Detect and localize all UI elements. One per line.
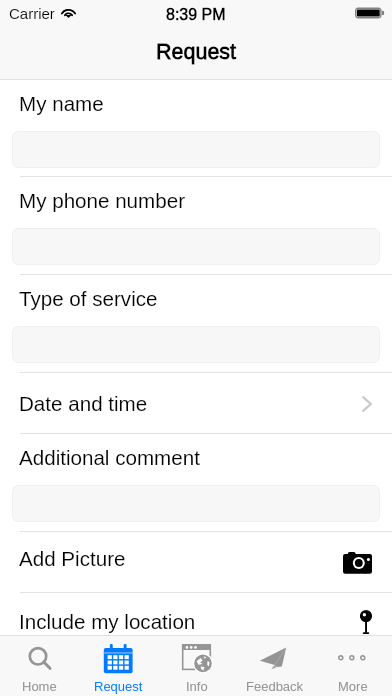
staticText: More bbox=[338, 679, 368, 694]
other: Add picture bbox=[343, 552, 372, 574]
button[interactable]: My name bbox=[0, 80, 392, 177]
staticText: Request bbox=[156, 40, 237, 64]
button[interactable]: Request bbox=[79, 635, 158, 696]
other: Include my location bbox=[358, 593, 372, 617]
staticText: Info bbox=[186, 679, 208, 694]
staticText: Type of service bbox=[19, 287, 158, 310]
button[interactable]: My phone number bbox=[0, 177, 392, 275]
button[interactable]: Add Picture bbox=[0, 532, 392, 593]
staticText: Feedback bbox=[246, 679, 304, 694]
staticText: Carrier bbox=[9, 5, 55, 22]
button[interactable]: Feedback bbox=[236, 635, 314, 696]
staticText: Date and time bbox=[19, 392, 148, 415]
button[interactable]: Info bbox=[158, 635, 236, 696]
staticText: Home bbox=[22, 679, 57, 694]
staticText: 8:39 PM bbox=[166, 6, 226, 24]
staticText: My phone number bbox=[19, 189, 185, 212]
staticText: Include my location bbox=[19, 610, 196, 633]
button[interactable]: Date and time bbox=[0, 373, 392, 434]
staticText: Request bbox=[94, 679, 143, 694]
staticText: My name bbox=[19, 92, 104, 115]
button[interactable]: Type of service bbox=[0, 275, 392, 373]
button[interactable]: Additional comment bbox=[0, 434, 392, 532]
staticText: Additional comment bbox=[19, 446, 200, 469]
button[interactable]: Home bbox=[0, 635, 79, 696]
button[interactable]: Include my location bbox=[0, 593, 392, 635]
button[interactable]: More bbox=[314, 635, 392, 696]
staticText: Add Picture bbox=[19, 547, 126, 570]
